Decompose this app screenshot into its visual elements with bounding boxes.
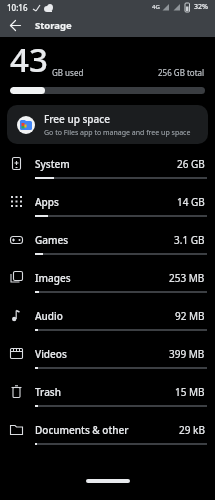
button[interactable]: Documents & other: [0, 416, 215, 454]
button[interactable]: Free up space: [7, 105, 208, 144]
button[interactable]: Storage: [0, 14, 215, 37]
staticText: Go to Files app to manage and free up sp…: [44, 128, 191, 138]
staticText: GB used: [52, 67, 84, 78]
staticText: 26 GB: [177, 157, 205, 171]
staticText: 15 MB: [175, 385, 205, 399]
button[interactable]: Games: [0, 226, 215, 264]
staticText: Free up space: [44, 112, 110, 126]
button[interactable]: Videos: [0, 340, 215, 378]
button[interactable]: Images: [0, 264, 215, 302]
staticText: Trash: [35, 385, 61, 399]
staticText: System: [35, 157, 70, 171]
staticText: Audio: [35, 309, 63, 323]
staticText: 43: [10, 37, 48, 82]
staticText: Games: [35, 233, 69, 247]
staticText: Images: [35, 271, 71, 285]
button[interactable]: Trash: [0, 378, 215, 416]
staticText: 253 MB: [169, 271, 205, 285]
staticText: 256 GB total: [158, 67, 205, 78]
staticText: 4G: [152, 3, 160, 11]
staticText: Documents & other: [35, 423, 129, 437]
staticText: 14 GB: [177, 195, 205, 209]
staticText: 92 MB: [175, 309, 205, 323]
button[interactable]: Audio: [0, 302, 215, 340]
staticText: 399 MB: [169, 347, 205, 361]
button[interactable]: Apps: [0, 188, 215, 226]
staticText: Apps: [35, 195, 59, 209]
button[interactable]: System: [0, 150, 215, 188]
staticText: Storage: [35, 19, 72, 32]
staticText: 32%: [194, 2, 208, 12]
staticText: 10:16: [7, 2, 28, 13]
staticText: 3.1 GB: [174, 233, 205, 247]
staticText: Videos: [35, 347, 67, 361]
staticText: 29 kB: [179, 423, 205, 437]
